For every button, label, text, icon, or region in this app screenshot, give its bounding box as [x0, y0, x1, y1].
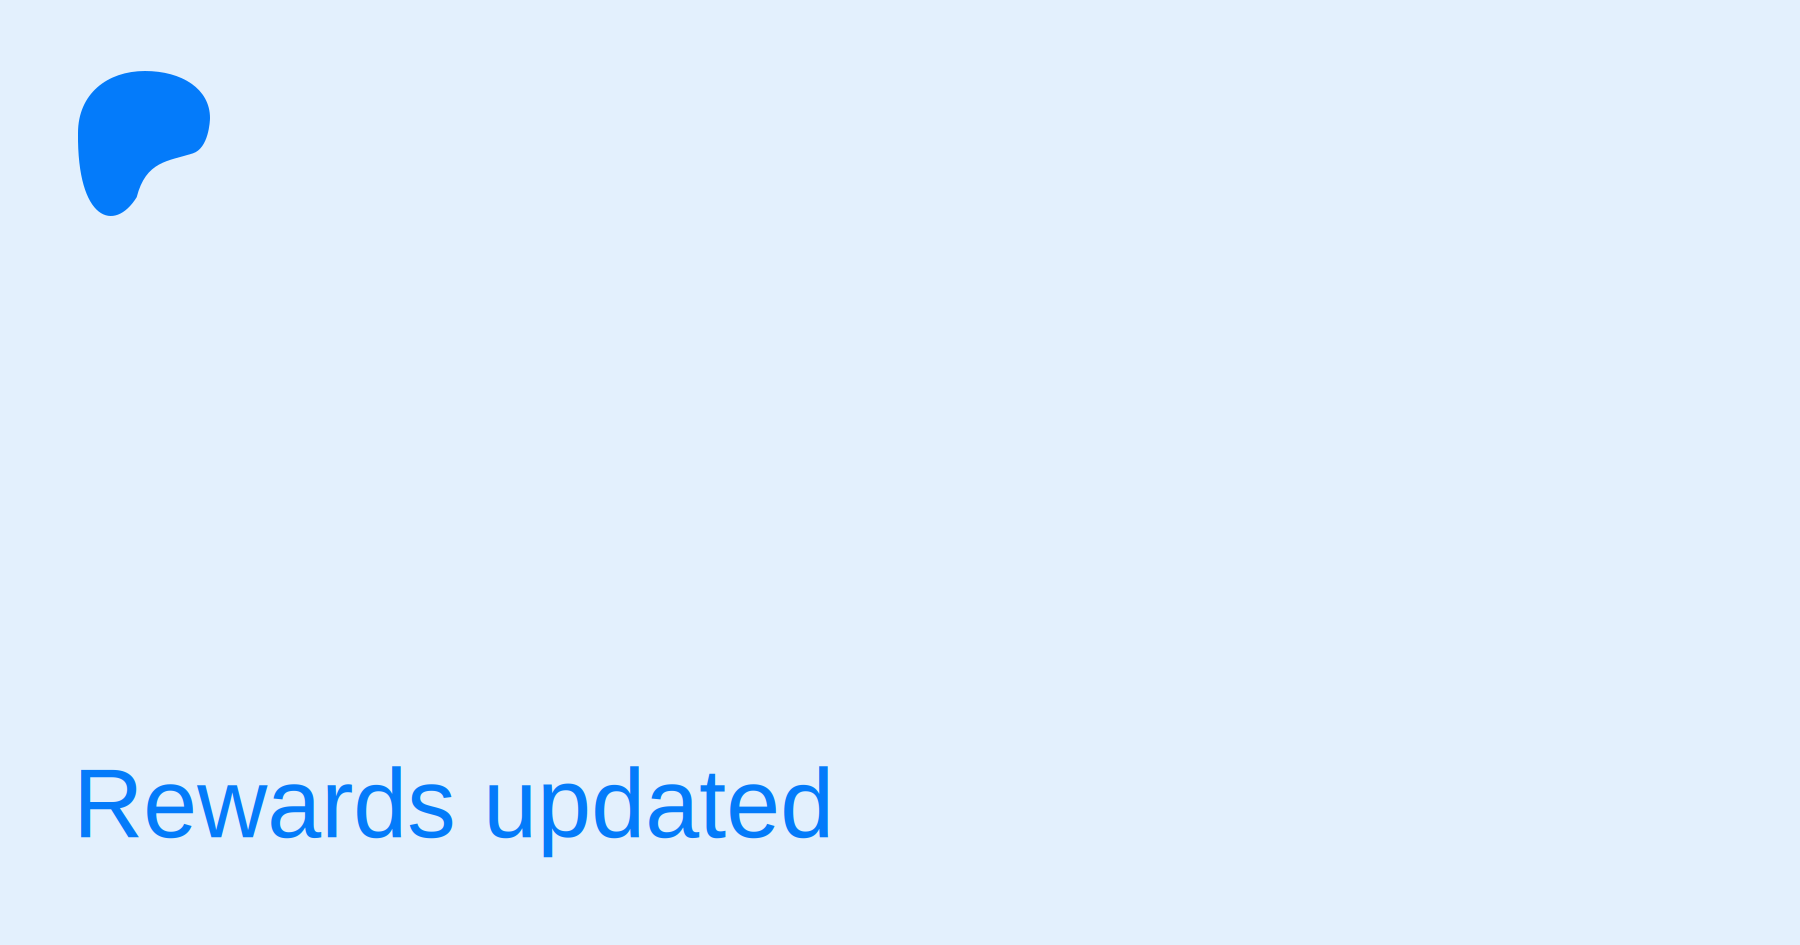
button[interactable]: Rewards updated	[73, 749, 834, 858]
button[interactable]: Patreon	[78, 71, 210, 217]
staticText: Rewards updated	[73, 749, 834, 858]
